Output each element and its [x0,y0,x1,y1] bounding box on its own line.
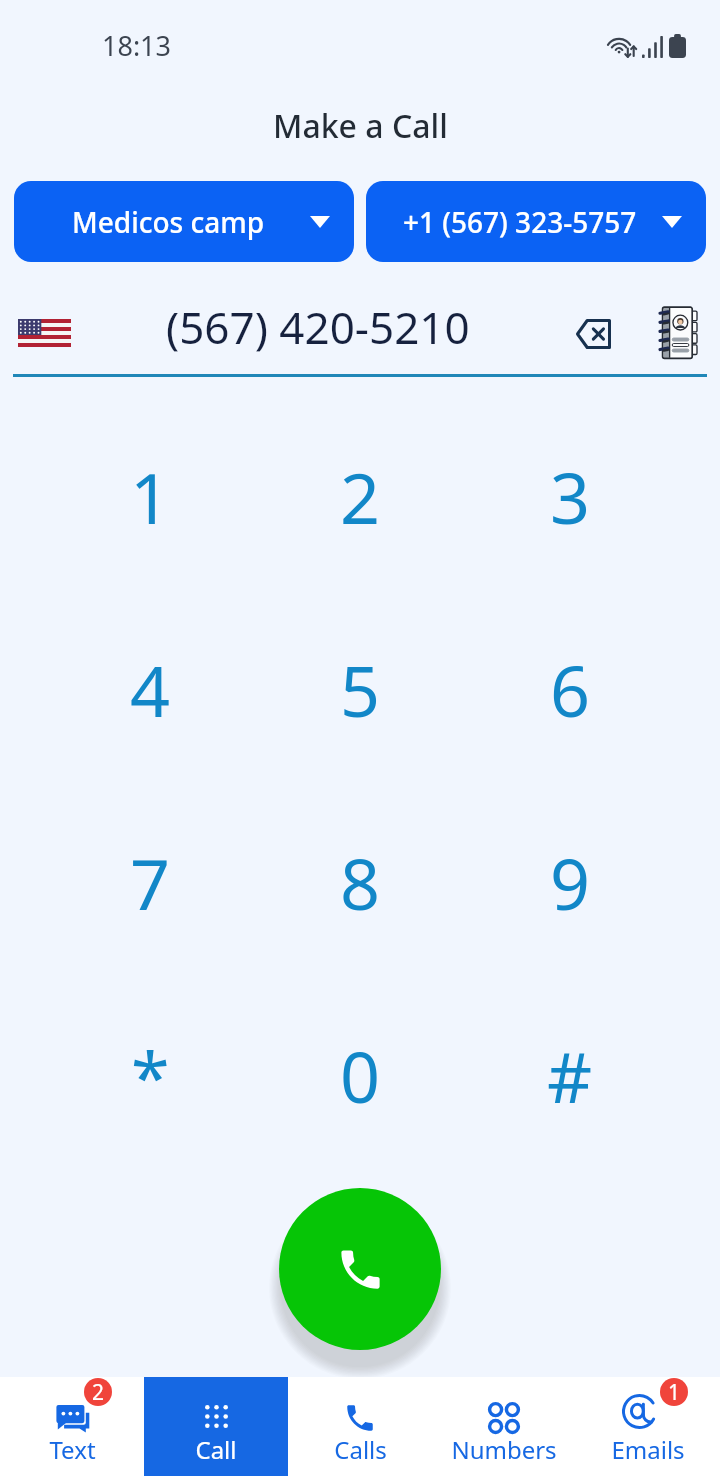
staticText: Calls [334,1433,387,1466]
button[interactable]: 9 [465,786,675,979]
button[interactable]: Contacts [648,302,708,362]
staticText: 1 [668,1378,681,1406]
staticText: 0 [340,1028,381,1123]
button[interactable]: 5 [255,593,465,786]
button[interactable]: 1 [45,400,255,593]
button[interactable]: Call [144,1377,288,1476]
staticText: 3 [550,449,591,544]
staticText: 6 [550,642,591,737]
staticText: # [547,1028,593,1123]
button[interactable]: Numbers [432,1377,576,1476]
staticText: (567) 420-5210 [166,297,470,357]
button[interactable]: Call [279,1188,441,1350]
staticText: Call [195,1433,237,1466]
button[interactable]: 8 [255,786,465,979]
button[interactable]: 0 [255,979,465,1172]
button[interactable]: * [45,979,255,1172]
button[interactable]: Calls [288,1377,432,1476]
button[interactable]: 4 [45,593,255,786]
button[interactable]: 7 [45,786,255,979]
button[interactable]: # [465,979,675,1172]
button[interactable]: 6 [465,593,675,786]
staticText: 7 [130,835,171,930]
button[interactable]: 1 [576,1377,720,1476]
staticText: 18:13 [102,27,172,64]
button[interactable]: Backspace [561,302,625,366]
button[interactable]: +1 (567) 323-5757 [366,181,706,262]
staticText: Numbers [451,1433,557,1466]
staticText: 8 [340,835,381,930]
staticText: 2 [92,1378,105,1406]
staticText: +1 (567) 323-5757 [403,203,637,241]
button[interactable]: 2 [255,400,465,593]
staticText: Emails [611,1433,685,1466]
staticText: 2 [340,449,381,544]
staticText: 1 [130,449,171,544]
button[interactable]: 2 [0,1377,144,1476]
staticText: 4 [130,642,171,737]
staticText: * [131,1028,170,1123]
button[interactable]: 3 [465,400,675,593]
staticText: Make a Call [273,104,448,148]
staticText: 9 [550,835,591,930]
button[interactable]: Medicos camp [14,181,354,262]
staticText: Medicos camp [72,203,265,241]
staticText: 5 [340,642,381,737]
staticText: Text [49,1433,96,1466]
